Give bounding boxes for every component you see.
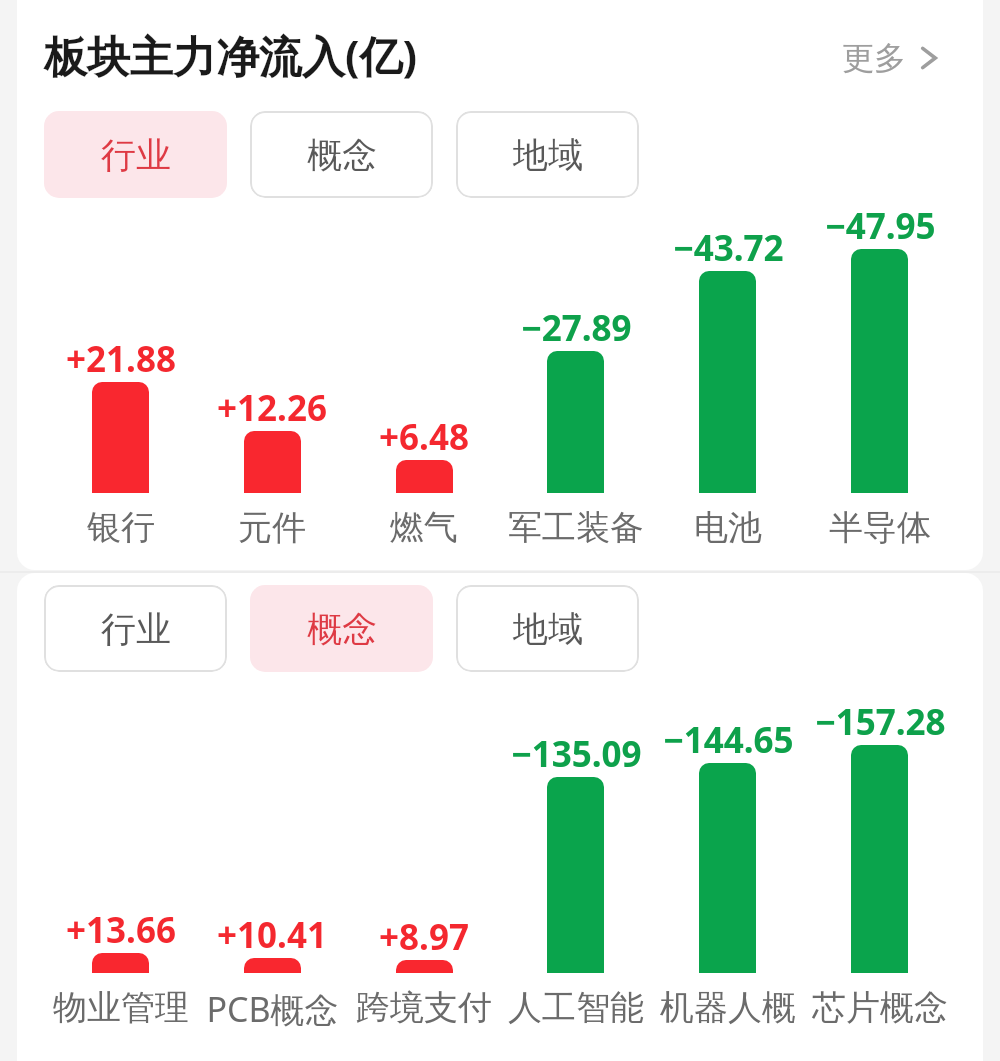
button[interactable]: 地域 xyxy=(456,111,639,198)
staticText: 军工装备 xyxy=(508,506,644,549)
staticText: +10.41 xyxy=(217,911,327,959)
staticText: 半导体 xyxy=(829,506,931,549)
button[interactable]: 行业 xyxy=(44,585,227,672)
staticText: +6.48 xyxy=(379,413,469,461)
staticText: 燃气 xyxy=(390,506,458,549)
staticText: 人工智能 xyxy=(508,986,644,1029)
staticText: −157.28 xyxy=(815,698,946,746)
staticText: +12.26 xyxy=(217,384,327,432)
button[interactable]: 半导体 xyxy=(851,249,908,493)
button[interactable]: 概念 xyxy=(250,585,433,672)
button[interactable]: 跨境支付(C xyxy=(396,960,453,973)
staticText: 地域 xyxy=(513,607,583,651)
button[interactable]: 物业管理 xyxy=(92,953,149,973)
staticText: 电池 xyxy=(694,506,762,549)
staticText: 跨境支付(C xyxy=(346,986,502,1029)
staticText: −47.95 xyxy=(825,202,936,250)
button[interactable]: 更多 xyxy=(836,30,944,86)
staticText: −43.72 xyxy=(673,224,784,272)
button[interactable]: 行业 xyxy=(44,111,227,198)
staticText: 概念 xyxy=(307,607,377,651)
button[interactable]: 银行 xyxy=(92,382,149,493)
button[interactable]: 元件 xyxy=(244,431,301,493)
staticText: 银行 xyxy=(87,506,155,549)
button[interactable]: 地域 xyxy=(456,585,639,672)
staticText: +8.97 xyxy=(379,913,469,961)
staticText: −27.89 xyxy=(521,304,632,352)
staticText: +13.66 xyxy=(66,906,176,954)
button[interactable]: 概念 xyxy=(250,111,433,198)
staticText: 机器人概念 xyxy=(650,986,806,1029)
button[interactable]: 人工智能 xyxy=(547,777,604,973)
staticText: 物业管理 xyxy=(53,986,189,1029)
staticText: +21.88 xyxy=(66,335,176,383)
staticText: 概念 xyxy=(307,133,377,177)
button[interactable]: PCB概念 xyxy=(244,958,301,973)
staticText: 行业 xyxy=(101,133,171,177)
button[interactable]: 机器人概念 xyxy=(699,763,756,973)
button[interactable]: 芯片概念 xyxy=(851,745,908,973)
staticText: 芯片概念 xyxy=(812,986,948,1029)
staticText: 地域 xyxy=(513,133,583,177)
button[interactable]: 军工装备 xyxy=(547,351,604,493)
staticText: −135.09 xyxy=(511,730,642,778)
staticText: PCB概念 xyxy=(206,986,339,1032)
staticText: 更多 xyxy=(842,38,906,78)
staticText: 板块主力净流入(亿) xyxy=(44,26,418,85)
staticText: 元件 xyxy=(238,506,306,549)
button[interactable]: 燃气 xyxy=(396,460,453,493)
staticText: 行业 xyxy=(101,607,171,651)
button[interactable]: 电池 xyxy=(699,271,756,493)
staticText: −144.65 xyxy=(663,716,794,764)
